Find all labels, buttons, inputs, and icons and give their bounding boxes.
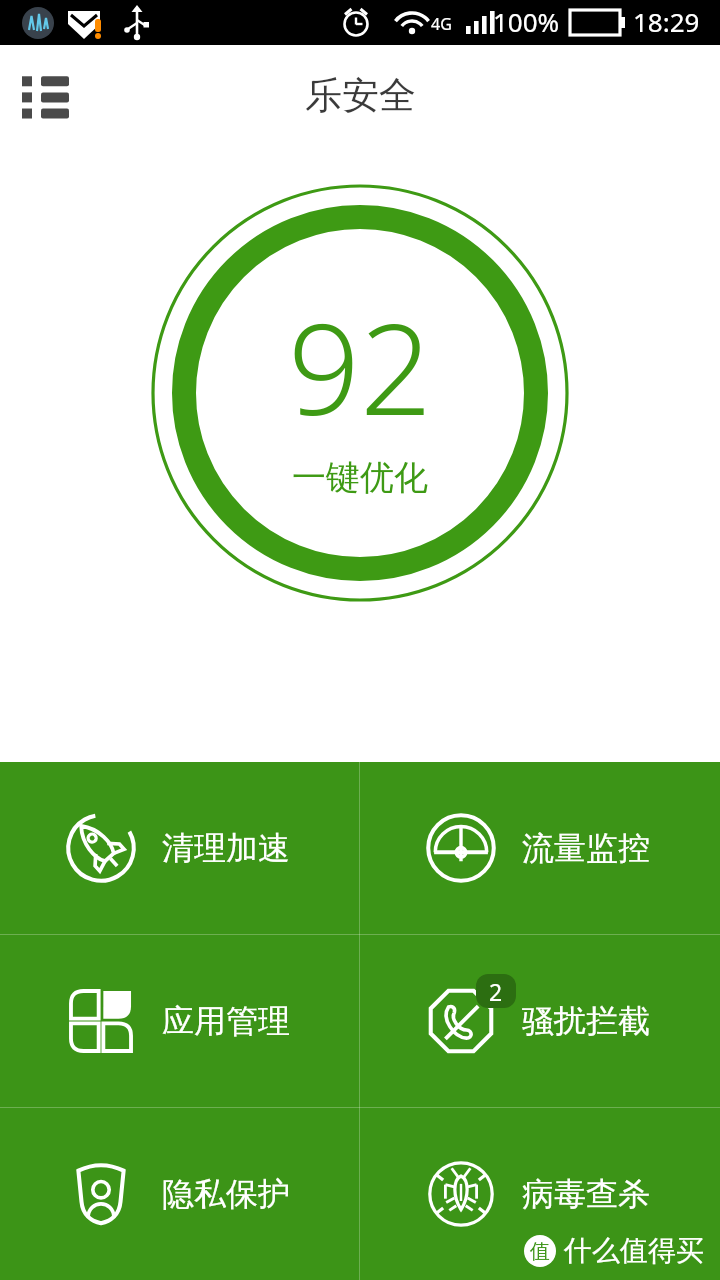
staticText: 应用管理 xyxy=(162,1001,290,1041)
staticText: 骚扰拦截 xyxy=(522,1001,650,1041)
button[interactable]: 清理加速 xyxy=(0,762,359,934)
staticText: 100% xyxy=(493,4,560,39)
staticText: 隐私保护 xyxy=(162,1174,290,1214)
button[interactable]: 流量监控 xyxy=(360,762,720,934)
staticText: 4G xyxy=(431,13,452,35)
button[interactable]: 应用管理 xyxy=(0,934,359,1107)
staticText: 值 xyxy=(530,1239,550,1264)
staticText: 一键优化 xyxy=(292,456,428,499)
staticText: 清理加速 xyxy=(162,828,290,868)
staticText: 2 xyxy=(489,976,503,1007)
button[interactable]: Menu xyxy=(8,57,84,133)
staticText: 病毒查杀 xyxy=(522,1174,650,1214)
button[interactable]: 2 xyxy=(360,934,720,1107)
button[interactable]: 隐私保护 xyxy=(0,1107,359,1280)
staticText: 乐安全 xyxy=(305,72,416,119)
staticText: 18:29 xyxy=(633,4,700,39)
button[interactable]: 病毒查杀 xyxy=(360,1107,720,1280)
staticText: 什么值得买 xyxy=(564,1233,704,1268)
staticText: 92 xyxy=(288,280,432,452)
button[interactable]: 一键优化 92 xyxy=(140,173,580,613)
staticText: 流量监控 xyxy=(522,828,650,868)
